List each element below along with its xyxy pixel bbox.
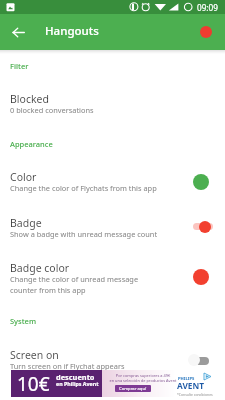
button[interactable]: Screen on: [0, 341, 225, 372]
staticText: en Philips Avent: [56, 380, 99, 387]
staticText: Change the color of unread message count…: [10, 274, 139, 295]
staticText: Blocked: [10, 92, 49, 106]
staticText: System: [10, 316, 37, 326]
button[interactable]: Badge: [0, 209, 225, 240]
staticText: AVENT: [177, 380, 204, 391]
staticText: Badge color: [10, 261, 70, 275]
staticText: Change the color of Flychats from this a…: [10, 183, 157, 193]
staticText: Hangouts: [45, 23, 99, 39]
staticText: Por compras superiores a 49€ en una sele…: [109, 373, 177, 383]
staticText: Screen on: [10, 348, 59, 362]
staticText: Badge: [10, 216, 42, 230]
staticText: 10€: [17, 371, 50, 397]
staticText: Appearance: [10, 139, 53, 149]
staticText: 09:09: [197, 2, 218, 13]
staticText: 0 blocked conversations: [10, 105, 94, 115]
button[interactable]: Blocked: [0, 85, 225, 116]
staticText: *Consulte condiciones: [177, 392, 213, 397]
staticText: PHILIPS: [178, 376, 195, 382]
button[interactable]: Badge color: [0, 254, 225, 296]
button[interactable]: Pick color: [193, 174, 209, 190]
staticText: Show a badge with unread message count: [10, 229, 158, 239]
button[interactable]: Change color: [200, 26, 212, 38]
button[interactable]: Color: [0, 163, 225, 194]
staticText: Filter: [10, 61, 29, 71]
staticText: Comprar aquí: [119, 386, 147, 392]
button[interactable]: Back: [6, 14, 30, 50]
staticText: descuento: [56, 372, 95, 382]
button[interactable]: Badge toggle, on: [192, 219, 216, 233]
button[interactable]: Screen on toggle, off: [187, 353, 211, 367]
staticText: Turn screen on if Flychat appears: [10, 361, 125, 371]
staticText: Color: [10, 170, 37, 184]
button[interactable]: Advertisement: [11, 370, 213, 397]
button[interactable]: Pick badge color: [193, 269, 209, 285]
